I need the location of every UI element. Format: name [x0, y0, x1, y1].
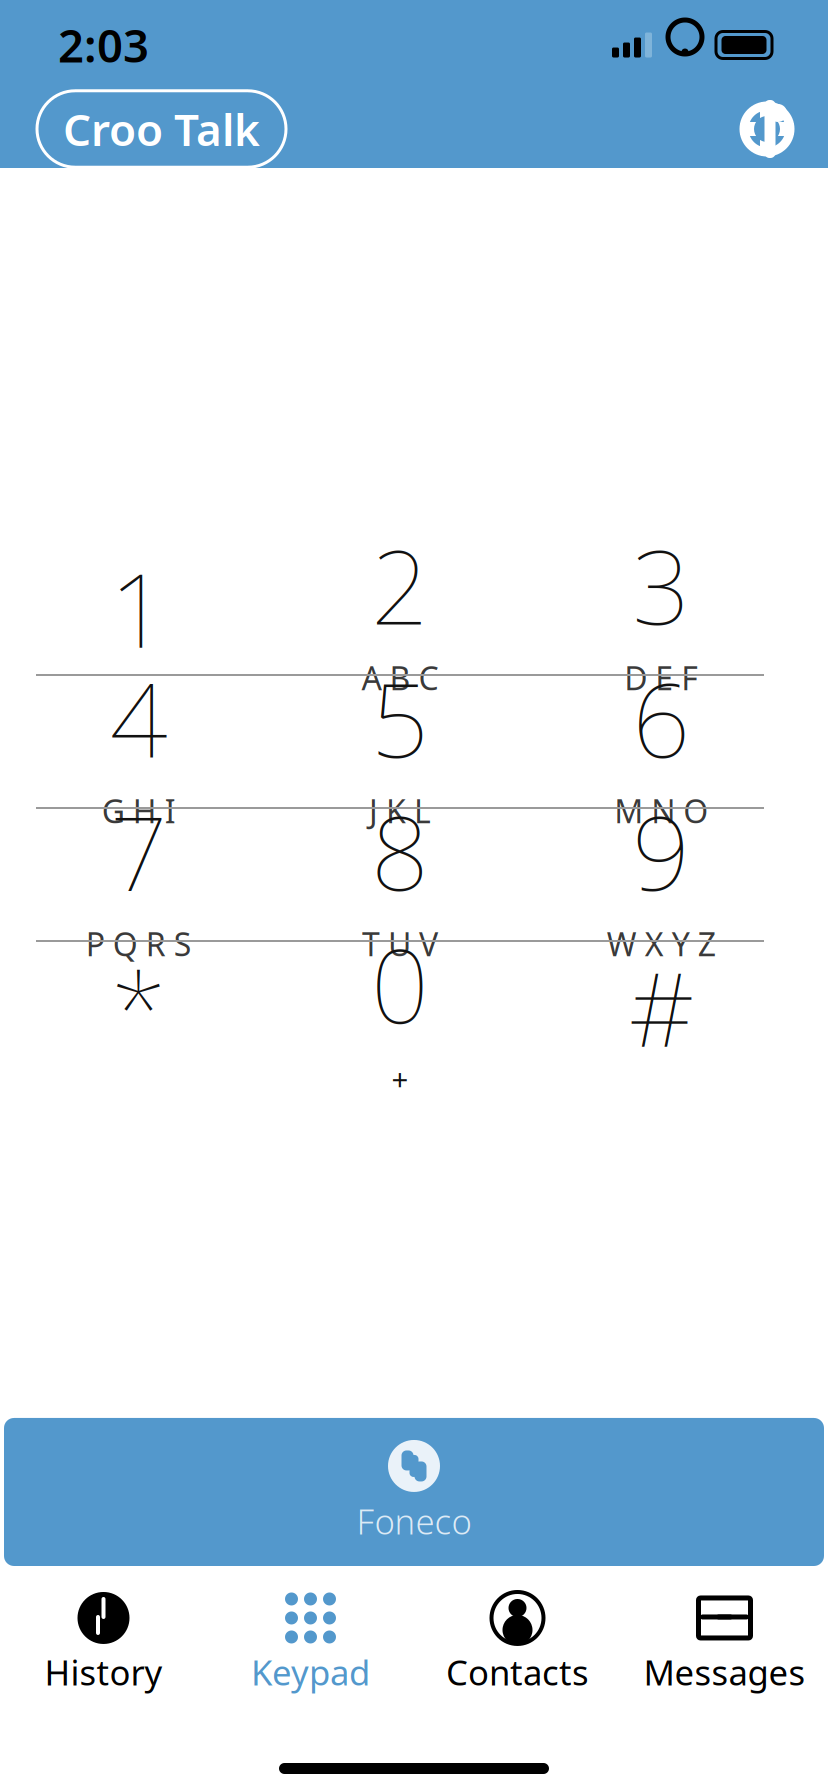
button[interactable]: Foneco: [4, 1418, 824, 1566]
staticText: *: [111, 940, 167, 1075]
staticText: 9: [632, 784, 690, 919]
staticText: T U V: [362, 922, 438, 965]
staticText: 8: [371, 784, 429, 919]
button[interactable]: *: [8, 942, 269, 1073]
button[interactable]: 1: [8, 543, 269, 674]
button[interactable]: 0: [269, 942, 531, 1073]
button[interactable]: Messages: [621, 1575, 828, 1705]
button[interactable]: 7: [8, 809, 269, 940]
staticText: Messages: [643, 1649, 805, 1695]
staticText: Croo Talk: [63, 100, 260, 158]
staticText: P Q R S: [86, 922, 192, 965]
staticText: 5: [371, 651, 429, 786]
button[interactable]: Settings: [735, 98, 799, 160]
button[interactable]: Croo Talk: [37, 91, 286, 167]
staticText: 1: [110, 541, 168, 676]
staticText: 6: [632, 651, 690, 786]
button[interactable]: History: [0, 1575, 207, 1705]
button[interactable]: 8: [269, 809, 531, 940]
button[interactable]: 9: [531, 809, 792, 940]
staticText: Foneco: [356, 1498, 471, 1544]
staticText: 3: [632, 518, 690, 653]
staticText: J K L: [369, 789, 431, 832]
staticText: M N O: [614, 789, 708, 832]
button[interactable]: Contacts: [414, 1575, 621, 1705]
button[interactable]: Keypad: [207, 1575, 414, 1705]
button[interactable]: #: [531, 942, 792, 1073]
button[interactable]: 4: [8, 676, 269, 807]
staticText: +: [391, 1059, 408, 1098]
button[interactable]: 6: [531, 676, 792, 807]
button[interactable]: 5: [269, 676, 531, 807]
button[interactable]: 3: [531, 543, 792, 674]
staticText: 7: [110, 784, 168, 919]
staticText: Contacts: [446, 1649, 589, 1695]
staticText: A B C: [361, 656, 438, 699]
staticText: W X Y Z: [607, 922, 716, 965]
staticText: D E F: [624, 656, 698, 699]
staticText: G H I: [102, 789, 176, 832]
button[interactable]: 2: [269, 543, 531, 674]
staticText: History: [44, 1649, 162, 1695]
staticText: 0: [371, 917, 429, 1051]
staticText: 4: [110, 651, 168, 786]
staticText: #: [629, 940, 694, 1075]
staticText: Keypad: [251, 1649, 370, 1695]
staticText: 2: [371, 518, 429, 653]
staticText: 2:03: [58, 15, 149, 75]
